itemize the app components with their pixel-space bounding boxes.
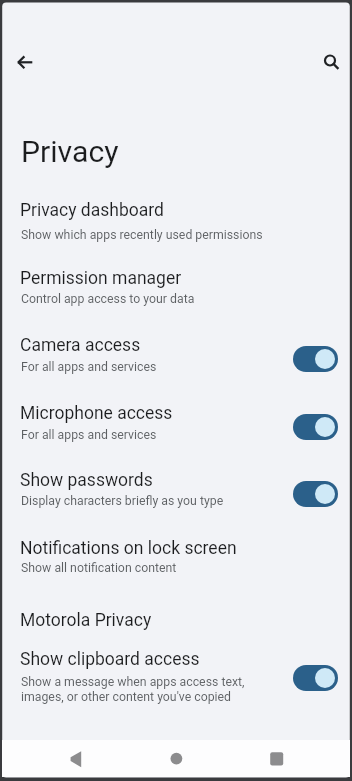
- button[interactable]: Microphone access: [0, 393, 352, 461]
- button[interactable]: Camera access: [0, 325, 352, 393]
- button[interactable]: Notifications on lock screen: [0, 529, 352, 597]
- staticText: Show all notification content: [21, 561, 177, 575]
- staticText: Microphone access: [20, 403, 173, 424]
- staticText: Camera access: [20, 335, 141, 356]
- staticText: Permission manager: [20, 268, 182, 289]
- staticText: Show passwords: [20, 470, 153, 491]
- button[interactable]: [293, 665, 338, 691]
- button[interactable]: [56, 740, 96, 777]
- button[interactable]: Show clipboard access: [0, 643, 352, 728]
- button[interactable]: [156, 740, 196, 777]
- button[interactable]: Motorola Privacy: [0, 597, 352, 643]
- button[interactable]: Privacy dashboard: [0, 189, 352, 257]
- staticText: Show which apps recently used permission…: [21, 228, 263, 242]
- staticText: Control app access to your data: [21, 292, 195, 306]
- staticText: Motorola Privacy: [20, 610, 152, 631]
- button[interactable]: [293, 346, 338, 372]
- button[interactable]: [257, 740, 297, 777]
- button[interactable]: [293, 414, 338, 440]
- button[interactable]: [314, 45, 346, 77]
- staticText: Show clipboard access: [20, 649, 200, 670]
- staticText: For all apps and services: [21, 428, 157, 442]
- staticText: Privacy: [21, 134, 119, 169]
- staticText: Show a message when apps access text, im…: [21, 675, 245, 704]
- button[interactable]: [9, 46, 41, 78]
- button[interactable]: Permission manager: [0, 257, 352, 325]
- button[interactable]: Show passwords: [0, 461, 352, 529]
- staticText: For all apps and services: [21, 360, 157, 374]
- button[interactable]: [293, 481, 338, 507]
- staticText: Notifications on lock screen: [20, 538, 237, 559]
- staticText: Display characters briefly as you type: [21, 494, 224, 508]
- staticText: Privacy dashboard: [20, 200, 164, 221]
